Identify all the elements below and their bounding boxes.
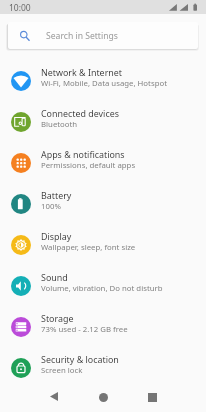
staticText: Display <box>41 230 72 242</box>
staticText: Network & Internet <box>41 66 123 78</box>
button[interactable]: Battery <box>0 183 206 224</box>
button[interactable]: Network & Internet <box>0 60 206 101</box>
staticText: Apps & notifications <box>41 148 125 160</box>
staticText: Wallpaper, sleep, font size <box>41 242 136 253</box>
staticText: Search in Settings <box>46 30 118 42</box>
staticText: Screen lock <box>41 365 83 376</box>
staticText: Storage <box>41 312 74 324</box>
button[interactable]: Connected devices <box>0 101 206 142</box>
staticText: 10:00 <box>9 2 31 14</box>
staticText: Battery <box>41 189 72 201</box>
button[interactable]: Apps & notifications <box>0 142 206 183</box>
button[interactable]: Back <box>40 383 67 410</box>
button[interactable]: Sound <box>0 265 206 306</box>
button[interactable]: Home <box>90 384 117 411</box>
staticText: Wi-Fi, Mobile, Data usage, Hotspot <box>41 78 167 89</box>
button[interactable]: Security & location <box>0 347 206 388</box>
staticText: Connected devices <box>41 107 119 119</box>
button[interactable]: Search in Settings <box>8 22 198 49</box>
staticText: Bluetooth <box>41 119 78 130</box>
staticText: Security & location <box>41 353 119 365</box>
button[interactable]: Storage <box>0 306 206 347</box>
staticText: Sound <box>41 271 68 283</box>
button[interactable]: Display <box>0 224 206 265</box>
button[interactable]: Recents <box>139 384 166 411</box>
staticText: 73% used - 2.12 GB free <box>41 324 128 335</box>
staticText: 100% <box>41 201 61 212</box>
staticText: Volume, vibration, Do not disturb <box>41 283 163 294</box>
staticText: Permissions, default apps <box>41 160 136 171</box>
